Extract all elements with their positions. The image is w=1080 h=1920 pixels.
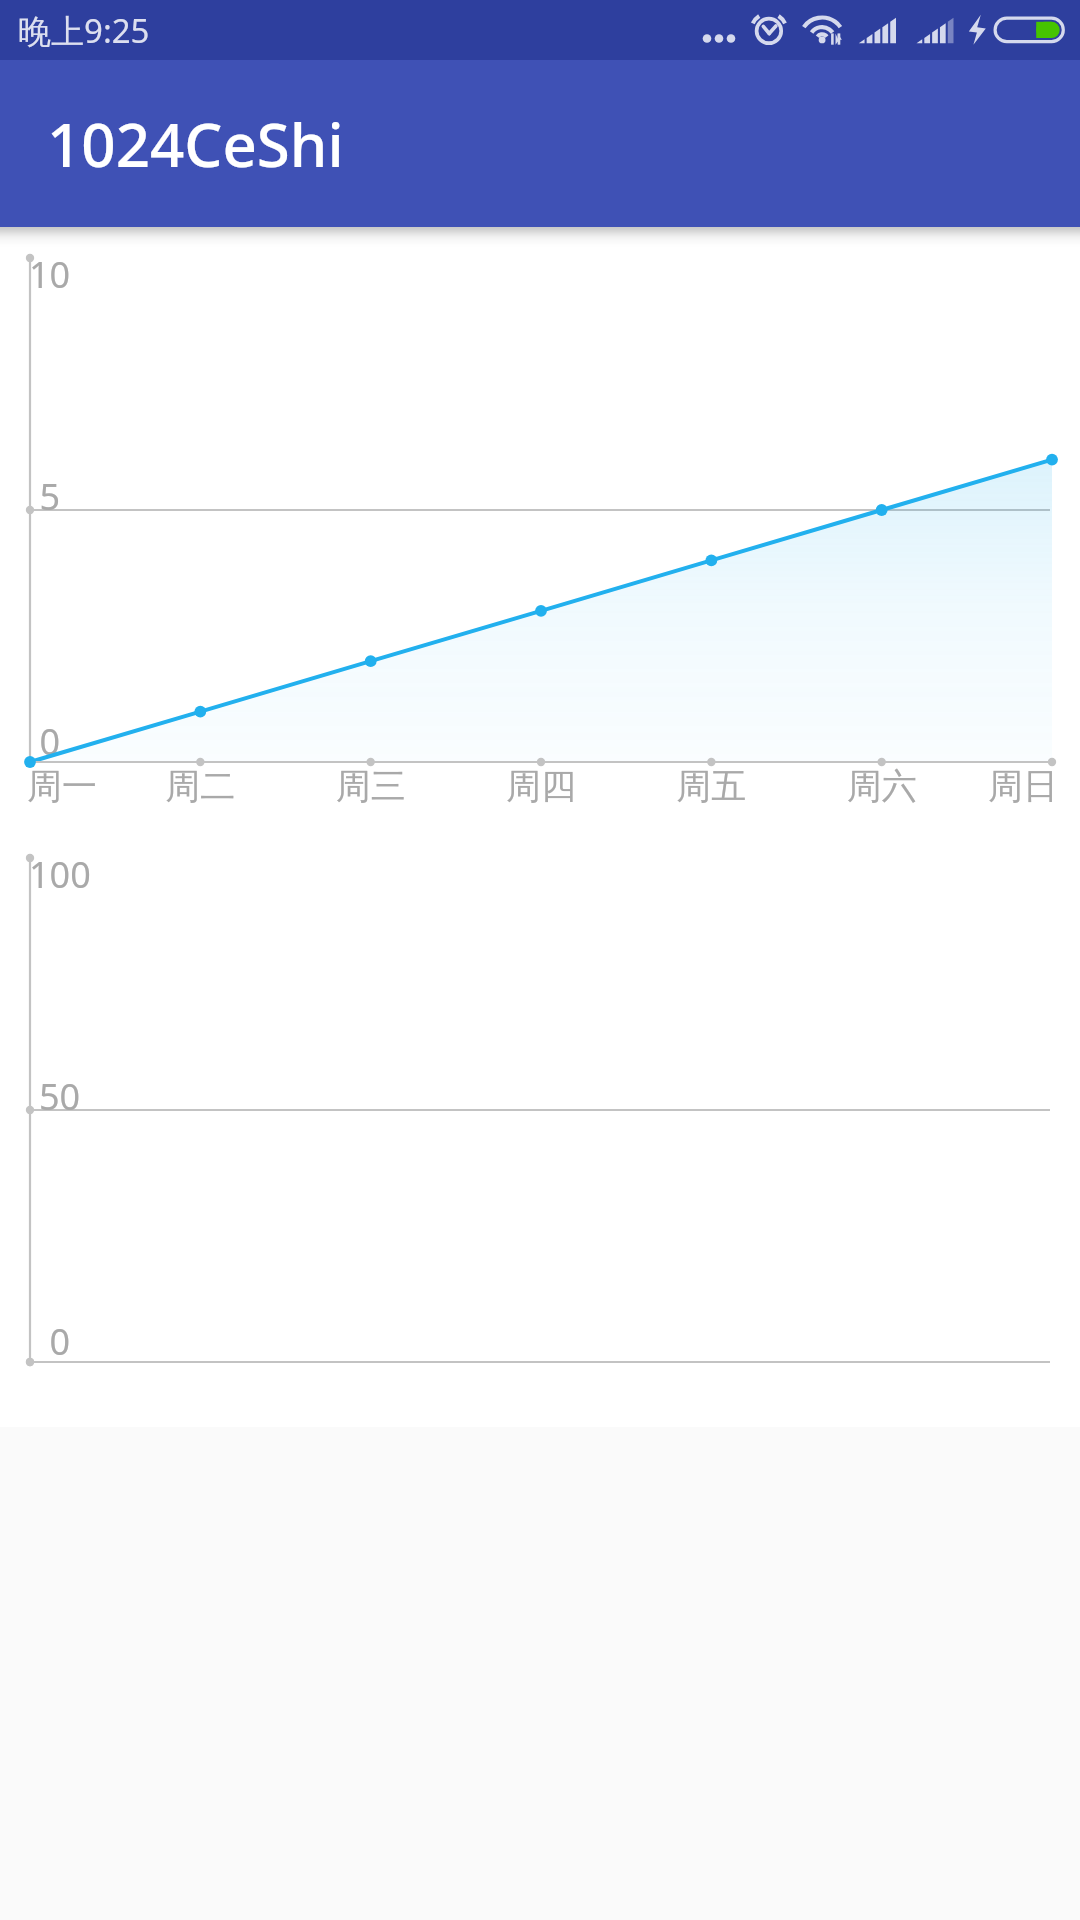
staticText: 晚上9:25 [18,8,150,53]
staticText: 1024CeShi [47,103,344,185]
button[interactable]: 周统计折线图 [0,227,1080,827]
button[interactable]: 1024CeShi [0,60,1080,227]
button[interactable]: 百分比折线图 [0,827,1080,1427]
